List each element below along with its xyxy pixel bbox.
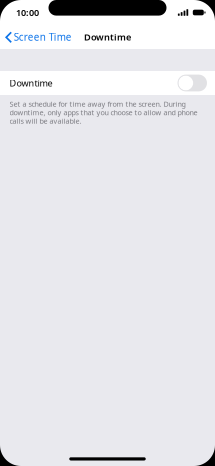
staticText: Screen Time bbox=[14, 30, 72, 44]
staticText: Set a schedule for time away from the sc… bbox=[9, 100, 197, 125]
button[interactable]: Screen Time bbox=[0, 26, 72, 48]
staticText: 10:00 bbox=[16, 6, 39, 19]
staticText: Downtime bbox=[84, 31, 131, 43]
button[interactable]: Downtime bbox=[0, 71, 215, 95]
staticText: Downtime bbox=[9, 77, 52, 89]
